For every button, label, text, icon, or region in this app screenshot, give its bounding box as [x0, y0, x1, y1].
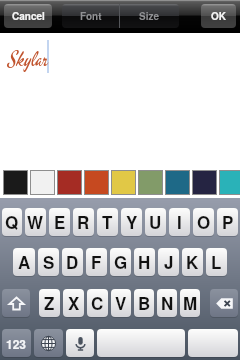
button[interactable]: N [157, 289, 177, 317]
button[interactable]: Space [97, 329, 185, 357]
staticText: I [177, 210, 182, 234]
staticText: K [186, 250, 199, 274]
button[interactable]: Dictation [66, 329, 94, 357]
button[interactable]: Size [120, 4, 179, 28]
staticText: OK [211, 9, 226, 23]
button[interactable]: Backspace [210, 289, 238, 317]
button[interactable]: Q [2, 208, 22, 236]
staticText: X [68, 291, 80, 315]
staticText: Q [5, 210, 19, 234]
button[interactable]: Next keyboard [34, 329, 63, 357]
button[interactable]: OK [201, 4, 236, 28]
staticText: F [91, 250, 102, 274]
button[interactable]: S [38, 248, 59, 276]
staticText: N [161, 291, 174, 315]
button[interactable]: Numbers and symbols [2, 329, 31, 357]
staticText: C [91, 291, 104, 315]
staticText: A [18, 250, 31, 274]
button[interactable]: U [145, 208, 166, 236]
button[interactable]: O [193, 208, 214, 236]
button[interactable]: F [86, 248, 107, 276]
staticText: Z [44, 291, 55, 315]
staticText: R [77, 210, 90, 234]
staticText: Font [80, 9, 102, 23]
staticText: O [197, 210, 211, 234]
staticText: W [27, 210, 44, 234]
button[interactable]: X [63, 289, 84, 317]
staticText: Cancel [12, 9, 45, 23]
button[interactable]: E [49, 208, 70, 236]
button[interactable]: M [180, 289, 200, 317]
staticText: J [164, 250, 174, 274]
button[interactable]: I [169, 208, 190, 236]
button[interactable]: T [97, 208, 118, 236]
staticText: P [222, 210, 234, 234]
staticText: L [211, 250, 222, 274]
button[interactable]: H [134, 248, 155, 276]
button[interactable]: J [158, 248, 179, 276]
button[interactable]: V [111, 289, 131, 317]
staticText: G [114, 250, 128, 274]
button[interactable]: P [217, 208, 238, 236]
button[interactable]: Cancel [4, 4, 52, 28]
button[interactable]: Return [188, 329, 238, 357]
staticText: 123 [6, 335, 27, 352]
staticText: T [102, 210, 113, 234]
staticText: H [138, 250, 151, 274]
staticText: Skylar [9, 45, 49, 73]
button[interactable]: Y [121, 208, 142, 236]
button[interactable]: D [62, 248, 83, 276]
button[interactable]: K [182, 248, 203, 276]
staticText: U [149, 210, 162, 234]
button[interactable]: Z [39, 289, 60, 317]
staticText: D [66, 250, 79, 274]
staticText: Y [126, 210, 138, 234]
button[interactable]: G [110, 248, 131, 276]
button[interactable]: W [25, 208, 46, 236]
button[interactable]: Shift [2, 289, 30, 317]
staticText: B [138, 291, 151, 315]
staticText: E [54, 210, 66, 234]
staticText: S [43, 250, 55, 274]
staticText: M [183, 291, 198, 315]
staticText: Size [139, 9, 160, 23]
button[interactable]: R [73, 208, 94, 236]
button[interactable]: A [13, 248, 35, 276]
button[interactable]: C [87, 289, 108, 317]
button[interactable]: Font [62, 4, 119, 28]
button[interactable]: L [206, 248, 227, 276]
staticText: V [115, 291, 127, 315]
button[interactable]: B [134, 289, 154, 317]
